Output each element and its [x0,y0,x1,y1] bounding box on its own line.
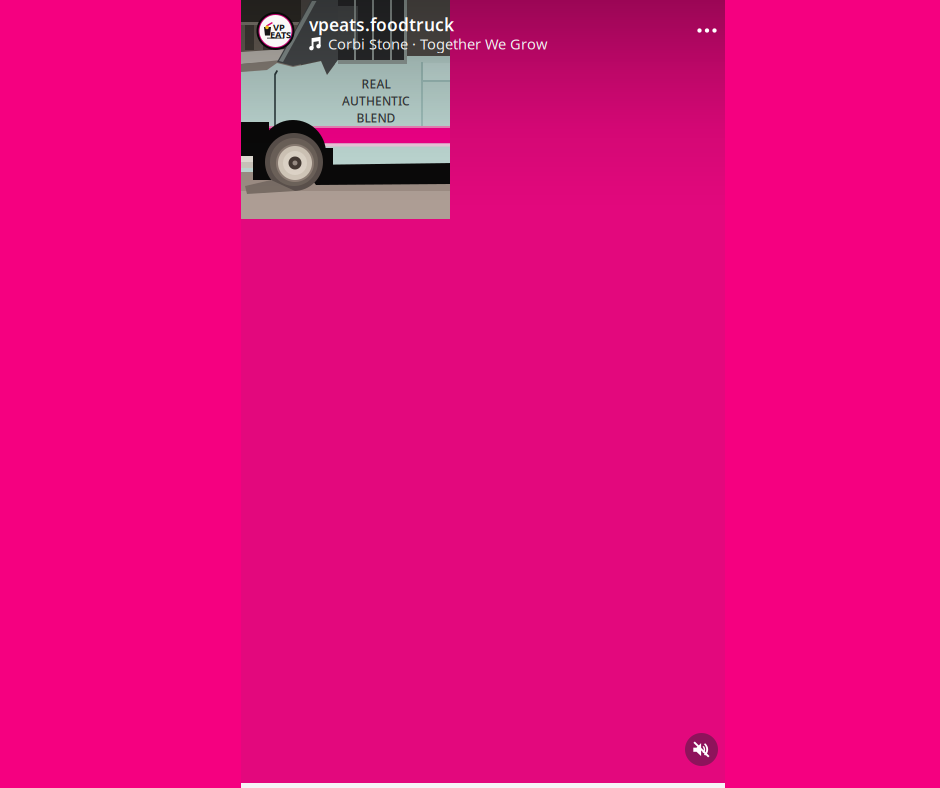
staticText: VP [273,21,285,33]
staticText: EATS [270,28,291,41]
staticText: AUTHENTIC [342,93,410,109]
staticText: BLEND [356,110,395,126]
button[interactable]: Unmute [685,733,718,766]
button[interactable]: vpeats.foodtruck profile photo [255,12,296,50]
button[interactable]: More options [687,10,727,50]
staticText: REAL [361,76,390,92]
button[interactable]: Corbi Stone · Together We Grow [308,34,548,53]
staticText: Corbi Stone · Together We Grow [328,34,548,53]
button[interactable]: vpeats.foodtruck [309,13,454,36]
staticText: vpeats.foodtruck [309,13,454,36]
